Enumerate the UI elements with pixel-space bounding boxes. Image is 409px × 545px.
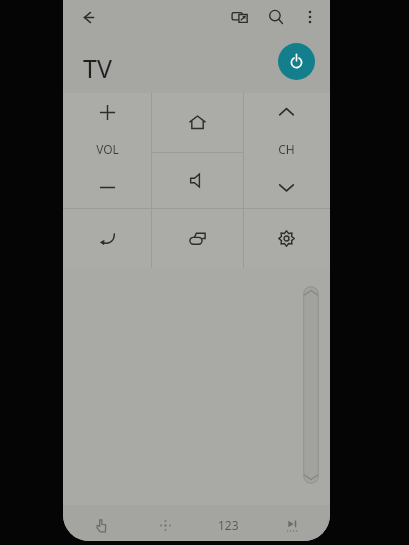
staticText: 123 [218,517,239,533]
button[interactable]: Mute [151,153,243,208]
button[interactable]: Back [63,209,151,268]
button[interactable]: Search [260,1,292,33]
button[interactable]: Touchpad [75,509,127,541]
button[interactable]: Power [278,43,315,80]
button[interactable]: More options [294,1,326,33]
button[interactable]: Cast to device [224,1,256,33]
button[interactable]: Settings [243,209,330,268]
button[interactable]: Source [151,209,243,268]
button[interactable]: Volume down [63,167,151,207]
staticText: TV [83,51,112,85]
button[interactable]: Number pad [202,509,254,541]
staticText: CH [278,141,295,157]
button[interactable]: Home [151,93,243,152]
button[interactable]: D-pad [139,509,191,541]
button[interactable]: Scroll [303,286,319,484]
staticText: VOL [96,141,119,157]
button[interactable]: Playback [266,509,318,541]
button[interactable]: Channel down [243,167,330,207]
button[interactable]: Volume up [63,93,151,131]
button[interactable]: Channel up [243,93,330,131]
button[interactable]: Back [71,0,105,34]
